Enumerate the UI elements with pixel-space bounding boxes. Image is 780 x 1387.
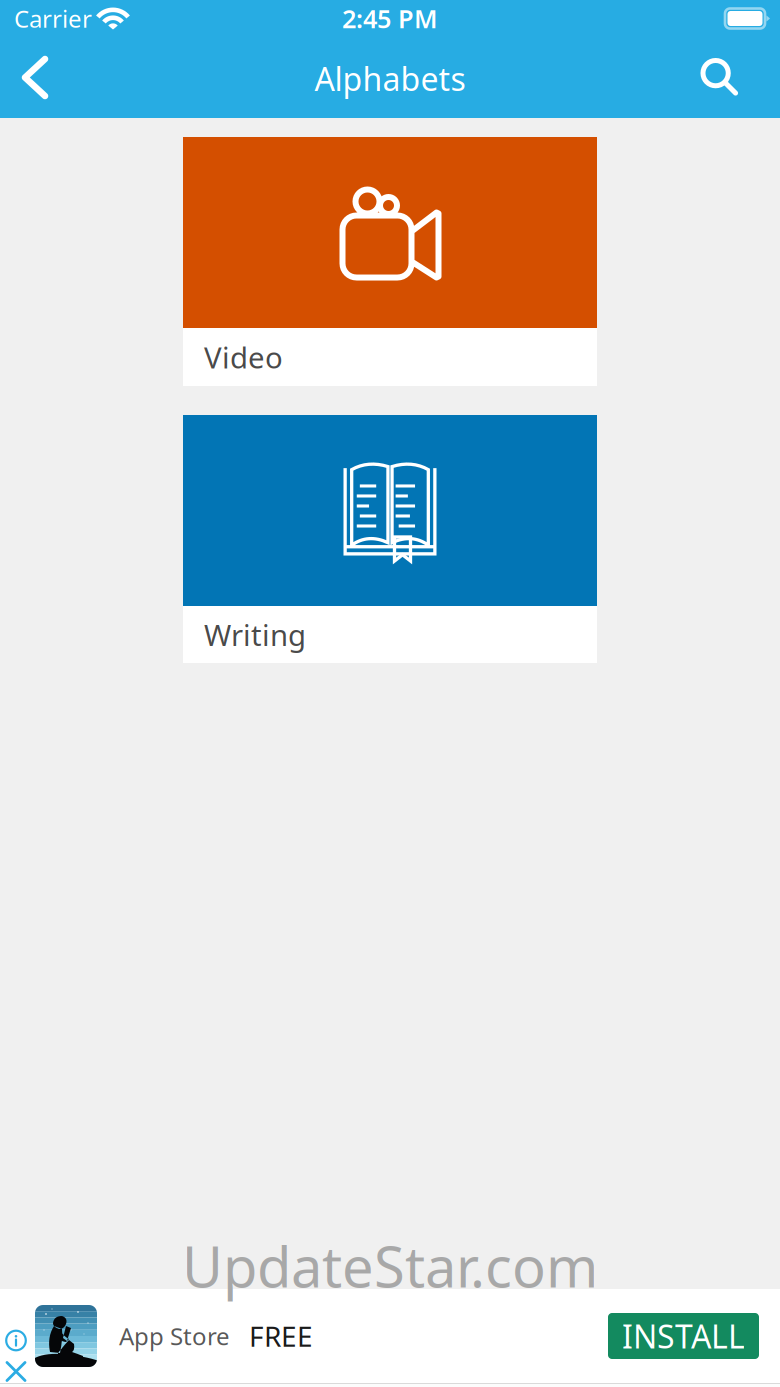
button[interactable]: Writing bbox=[183, 415, 597, 663]
staticText: Carrier bbox=[14, 3, 92, 34]
button[interactable]: Close ad bbox=[4, 1359, 28, 1383]
button[interactable]: Search bbox=[687, 41, 753, 113]
staticText: FREE bbox=[249, 1317, 313, 1355]
staticText: Writing bbox=[204, 615, 306, 654]
staticText: INSTALL bbox=[622, 1315, 745, 1357]
button[interactable]: INSTALL bbox=[608, 1313, 759, 1359]
staticText: Alphabets bbox=[314, 57, 465, 100]
button[interactable]: Back bbox=[2, 41, 68, 113]
staticText: App Store bbox=[119, 1320, 230, 1352]
staticText: Video bbox=[204, 337, 283, 376]
button[interactable]: Video bbox=[183, 137, 597, 386]
button[interactable]: Ad information bbox=[4, 1328, 28, 1352]
staticText: UpdateStar.com bbox=[182, 1229, 598, 1303]
staticText: 2:45 PM bbox=[342, 2, 438, 35]
